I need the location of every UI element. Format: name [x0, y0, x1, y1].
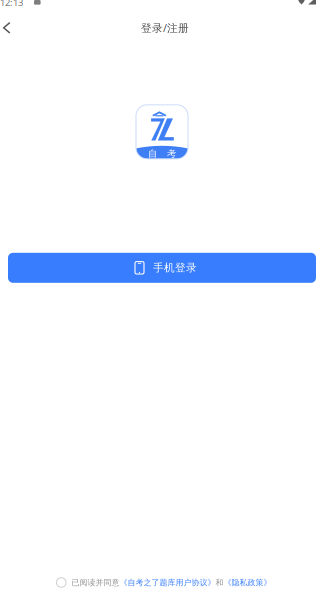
staticText: 12:13	[0, 0, 23, 9]
staticText: 登录/注册	[141, 21, 189, 35]
staticText: 已阅读并同意	[71, 578, 119, 587]
staticText: 自	[148, 148, 157, 159]
staticText: 考	[167, 148, 176, 159]
staticText: 和	[215, 578, 223, 587]
button[interactable]: 手机登录	[8, 253, 316, 283]
button[interactable]: 已阅读并同意	[52, 576, 267, 589]
staticText: 手机登录	[153, 261, 197, 274]
staticText: 《隐私政策》	[223, 578, 271, 587]
staticText: 《自考之了题库用户协议》	[119, 578, 215, 587]
button[interactable]: Back	[0, 14, 18, 42]
